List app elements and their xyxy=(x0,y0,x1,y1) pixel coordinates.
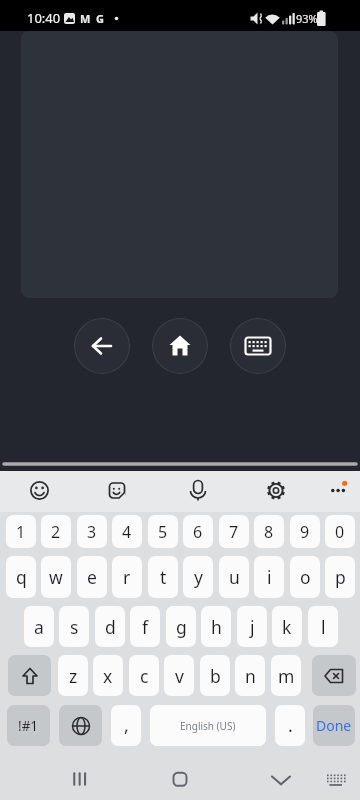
button[interactable]: !#1 xyxy=(7,705,50,746)
button[interactable]: Done xyxy=(313,705,355,746)
button[interactable]: v xyxy=(164,655,194,696)
staticText: k xyxy=(282,615,292,639)
button[interactable]: r xyxy=(112,556,142,598)
staticText: 9 xyxy=(300,521,310,543)
staticText: w xyxy=(49,565,63,589)
staticText: 8 xyxy=(264,521,274,543)
staticText: 93% xyxy=(296,11,318,26)
staticText: 4 xyxy=(122,521,132,543)
staticText: G xyxy=(96,11,104,26)
button[interactable] xyxy=(318,471,358,511)
staticText: 0 xyxy=(335,521,345,543)
button[interactable] xyxy=(59,705,102,746)
button[interactable]: 7 xyxy=(219,515,249,548)
button[interactable]: s xyxy=(59,606,89,647)
staticText: 1 xyxy=(16,521,26,543)
staticText: r xyxy=(123,565,131,589)
button[interactable] xyxy=(74,318,130,374)
staticText: h xyxy=(211,615,222,639)
button[interactable]: y xyxy=(183,556,213,598)
staticText: b xyxy=(210,664,221,688)
button[interactable]: l xyxy=(308,606,338,647)
staticText: t xyxy=(160,565,167,589)
staticText: f xyxy=(142,615,149,639)
button[interactable] xyxy=(178,471,218,511)
staticText: 7 xyxy=(229,521,239,543)
button[interactable]: x xyxy=(93,655,123,696)
button[interactable]: p xyxy=(325,556,355,598)
button[interactable]: 1 xyxy=(6,515,36,548)
button[interactable]: . xyxy=(275,705,305,746)
button[interactable] xyxy=(97,471,137,511)
button[interactable]: 8 xyxy=(254,515,284,548)
staticText: m xyxy=(278,664,295,688)
button[interactable] xyxy=(316,755,356,800)
staticText: English (US) xyxy=(180,719,236,733)
button[interactable]: 0 xyxy=(325,515,355,548)
staticText: 2 xyxy=(51,521,61,543)
button[interactable] xyxy=(256,755,306,800)
staticText: 3 xyxy=(87,521,97,543)
staticText: u xyxy=(229,565,240,589)
staticText: x xyxy=(103,664,113,688)
button[interactable]: c xyxy=(129,655,159,696)
staticText: 5 xyxy=(158,521,168,543)
button[interactable] xyxy=(55,755,105,800)
button[interactable]: h xyxy=(201,606,231,647)
staticText: e xyxy=(87,565,97,589)
staticText: d xyxy=(105,615,116,639)
button[interactable] xyxy=(155,755,205,800)
staticText: 10:40 xyxy=(27,9,61,27)
button[interactable]: f xyxy=(130,606,160,647)
button[interactable]: a xyxy=(24,606,54,647)
button[interactable] xyxy=(256,471,296,511)
button[interactable]: e xyxy=(77,556,107,598)
button[interactable]: m xyxy=(271,655,301,696)
button[interactable]: k xyxy=(272,606,302,647)
button[interactable] xyxy=(20,471,60,511)
staticText: v xyxy=(175,664,184,688)
button[interactable]: o xyxy=(290,556,320,598)
button[interactable]: 3 xyxy=(77,515,107,548)
button[interactable]: i xyxy=(254,556,284,598)
staticText: 6 xyxy=(193,521,203,543)
button[interactable]: n xyxy=(235,655,265,696)
staticText: , xyxy=(124,713,129,738)
staticText: l xyxy=(321,615,326,639)
button[interactable] xyxy=(8,655,51,696)
staticText: j xyxy=(250,615,255,639)
button[interactable]: 2 xyxy=(41,515,71,548)
staticText: s xyxy=(70,615,79,639)
staticText: i xyxy=(267,565,272,589)
staticText: !#1 xyxy=(18,717,39,735)
button[interactable]: q xyxy=(6,556,36,598)
button[interactable]: 9 xyxy=(290,515,320,548)
button[interactable]: , xyxy=(111,705,141,746)
button[interactable]: w xyxy=(41,556,71,598)
button[interactable] xyxy=(152,318,208,374)
button[interactable]: d xyxy=(95,606,125,647)
staticText: a xyxy=(34,615,44,639)
button[interactable]: b xyxy=(200,655,230,696)
staticText: c xyxy=(140,664,149,688)
staticText: z xyxy=(69,664,78,688)
staticText: M xyxy=(80,11,91,26)
button[interactable]: English (US) xyxy=(150,705,266,746)
button[interactable]: 5 xyxy=(148,515,178,548)
button[interactable] xyxy=(312,655,356,696)
button[interactable]: z xyxy=(58,655,88,696)
button[interactable]: g xyxy=(166,606,196,647)
staticText: Done xyxy=(316,716,352,735)
button[interactable]: 4 xyxy=(112,515,142,548)
button[interactable]: u xyxy=(219,556,249,598)
staticText: . xyxy=(288,713,293,738)
button[interactable]: 6 xyxy=(183,515,213,548)
staticText: p xyxy=(335,565,346,589)
button[interactable]: j xyxy=(237,606,267,647)
staticText: q xyxy=(16,565,27,589)
staticText: o xyxy=(300,565,311,589)
staticText: g xyxy=(176,615,187,639)
button[interactable]: t xyxy=(148,556,178,598)
button[interactable] xyxy=(230,318,286,374)
staticText: y xyxy=(194,565,203,589)
